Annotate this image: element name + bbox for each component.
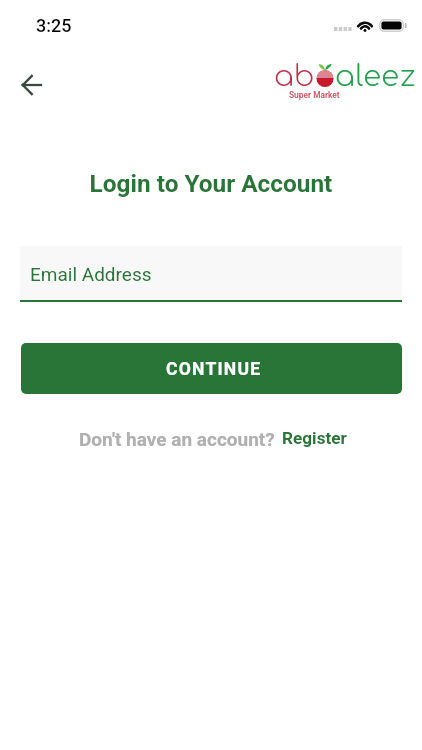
staticText: ab xyxy=(274,60,315,92)
button[interactable]: CONTINUE xyxy=(21,343,402,394)
staticText: Login to Your Account xyxy=(0,169,422,198)
staticText: Don't have an account? xyxy=(79,428,275,450)
staticText: aleez xyxy=(335,60,417,92)
staticText: 3:25 xyxy=(36,15,72,36)
staticText: Email Address xyxy=(30,263,152,285)
staticText: Register xyxy=(282,428,347,448)
button[interactable]: Back xyxy=(11,63,53,105)
staticText: CONTINUE xyxy=(166,359,262,380)
button[interactable]: Email Address xyxy=(20,246,402,302)
button[interactable]: Register xyxy=(282,428,347,448)
staticText: Super Market xyxy=(289,90,340,100)
